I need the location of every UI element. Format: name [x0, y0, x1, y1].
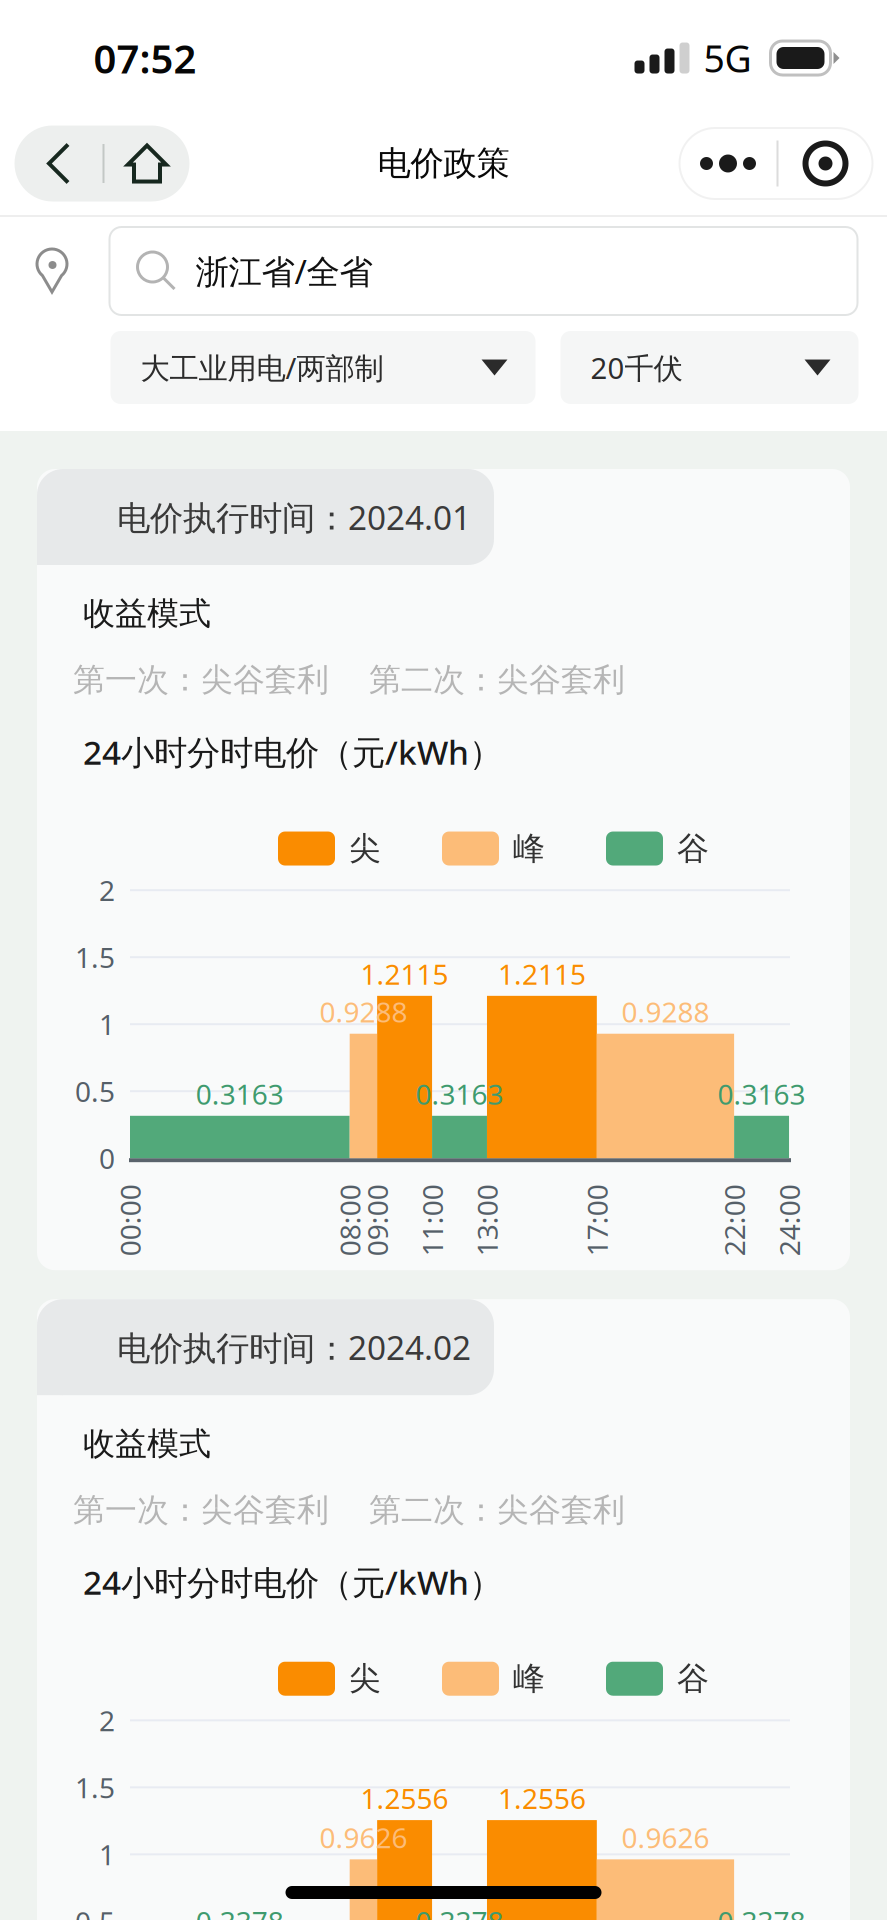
staticText: 1.2115: [498, 955, 586, 992]
staticText: 浙江省/全省: [195, 249, 372, 293]
staticText: 1.2556: [361, 1779, 449, 1817]
staticText: 收益模式: [83, 1424, 211, 1463]
staticText: 0.3378: [415, 1902, 503, 1920]
staticText: 谷: [677, 1659, 709, 1698]
staticText: 24小时分时电价（元/kWh）: [83, 730, 502, 774]
staticText: 0.3378: [196, 1902, 284, 1920]
staticText: 11:00: [396, 1202, 468, 1239]
staticText: 0.9288: [621, 993, 709, 1030]
button[interactable]: 浙江省/全省: [109, 227, 857, 315]
staticText: 电价政策: [377, 143, 509, 184]
staticText: 0.5: [75, 1903, 115, 1920]
staticText: 1: [99, 1006, 115, 1043]
staticText: 0.3163: [196, 1075, 284, 1112]
staticText: 峰: [513, 829, 545, 868]
staticText: 20千伏: [590, 348, 682, 387]
staticText: 0.3378: [718, 1902, 806, 1920]
staticText: 1: [99, 1836, 115, 1873]
staticText: 0.9288: [319, 993, 407, 1030]
staticText: 0.3163: [718, 1075, 806, 1112]
staticText: 13:00: [451, 1202, 523, 1239]
staticText: 1.2115: [361, 955, 449, 992]
staticText: 大工业用电/两部制: [140, 348, 383, 387]
staticText: 24:00: [753, 1202, 825, 1239]
staticText: 收益模式: [83, 594, 211, 633]
staticText: 00:00: [94, 1202, 166, 1239]
button[interactable]: 大工业用电/两部制: [110, 331, 535, 404]
staticText: 尖: [349, 829, 381, 868]
staticText: 峰: [513, 1659, 545, 1698]
staticText: 电价执行时间：2024.02: [117, 1325, 471, 1369]
staticText: 2: [99, 872, 115, 909]
button[interactable]: Back and Home: [14, 125, 189, 201]
staticText: 电价执行时间：2024.01: [117, 495, 471, 539]
staticText: 尖: [349, 1659, 381, 1698]
staticText: 0: [99, 1140, 115, 1177]
staticText: 1.5: [75, 1769, 115, 1806]
staticText: 07:52: [93, 31, 196, 84]
staticText: 22:00: [698, 1202, 770, 1239]
staticText: 24小时分时电价（元/kWh）: [83, 1560, 502, 1604]
staticText: 0.3163: [415, 1075, 503, 1112]
staticText: 5G: [703, 33, 751, 83]
staticText: 0.9626: [319, 1819, 407, 1856]
button[interactable]: Mini program menu: [679, 128, 872, 199]
staticText: 谷: [677, 829, 709, 868]
staticText: 1.2556: [498, 1779, 586, 1817]
staticText: 第一次：尖谷套利 第二次：尖谷套利: [73, 660, 625, 700]
button[interactable]: 20千伏: [560, 331, 858, 404]
staticText: 09:00: [341, 1202, 413, 1239]
staticText: 0.9626: [621, 1819, 709, 1856]
staticText: 08:00: [314, 1202, 386, 1239]
staticText: 1.5: [75, 939, 115, 976]
staticText: 2: [99, 1702, 115, 1739]
staticText: 第一次：尖谷套利 第二次：尖谷套利: [73, 1490, 625, 1530]
staticText: 17:00: [561, 1202, 633, 1239]
staticText: 0.5: [75, 1073, 115, 1110]
